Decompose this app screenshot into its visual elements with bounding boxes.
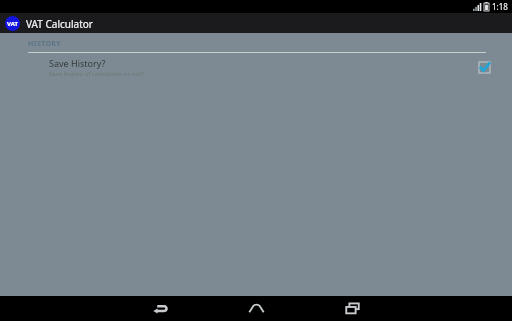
staticText: Save History?: [49, 57, 106, 69]
button[interactable]: Home: [239, 296, 273, 321]
button[interactable]: Save History?: [0, 53, 512, 81]
staticText: Save history of calculation or not?: [49, 70, 144, 78]
staticText: HISTORY: [28, 39, 62, 49]
button[interactable]: Recent apps: [335, 296, 369, 321]
button[interactable]: Save history toggle: [476, 59, 492, 75]
button[interactable]: Back: [143, 296, 177, 321]
staticText: 1:18: [492, 1, 508, 12]
staticText: VAT: [7, 20, 18, 28]
staticText: VAT Calculator: [26, 17, 93, 31]
